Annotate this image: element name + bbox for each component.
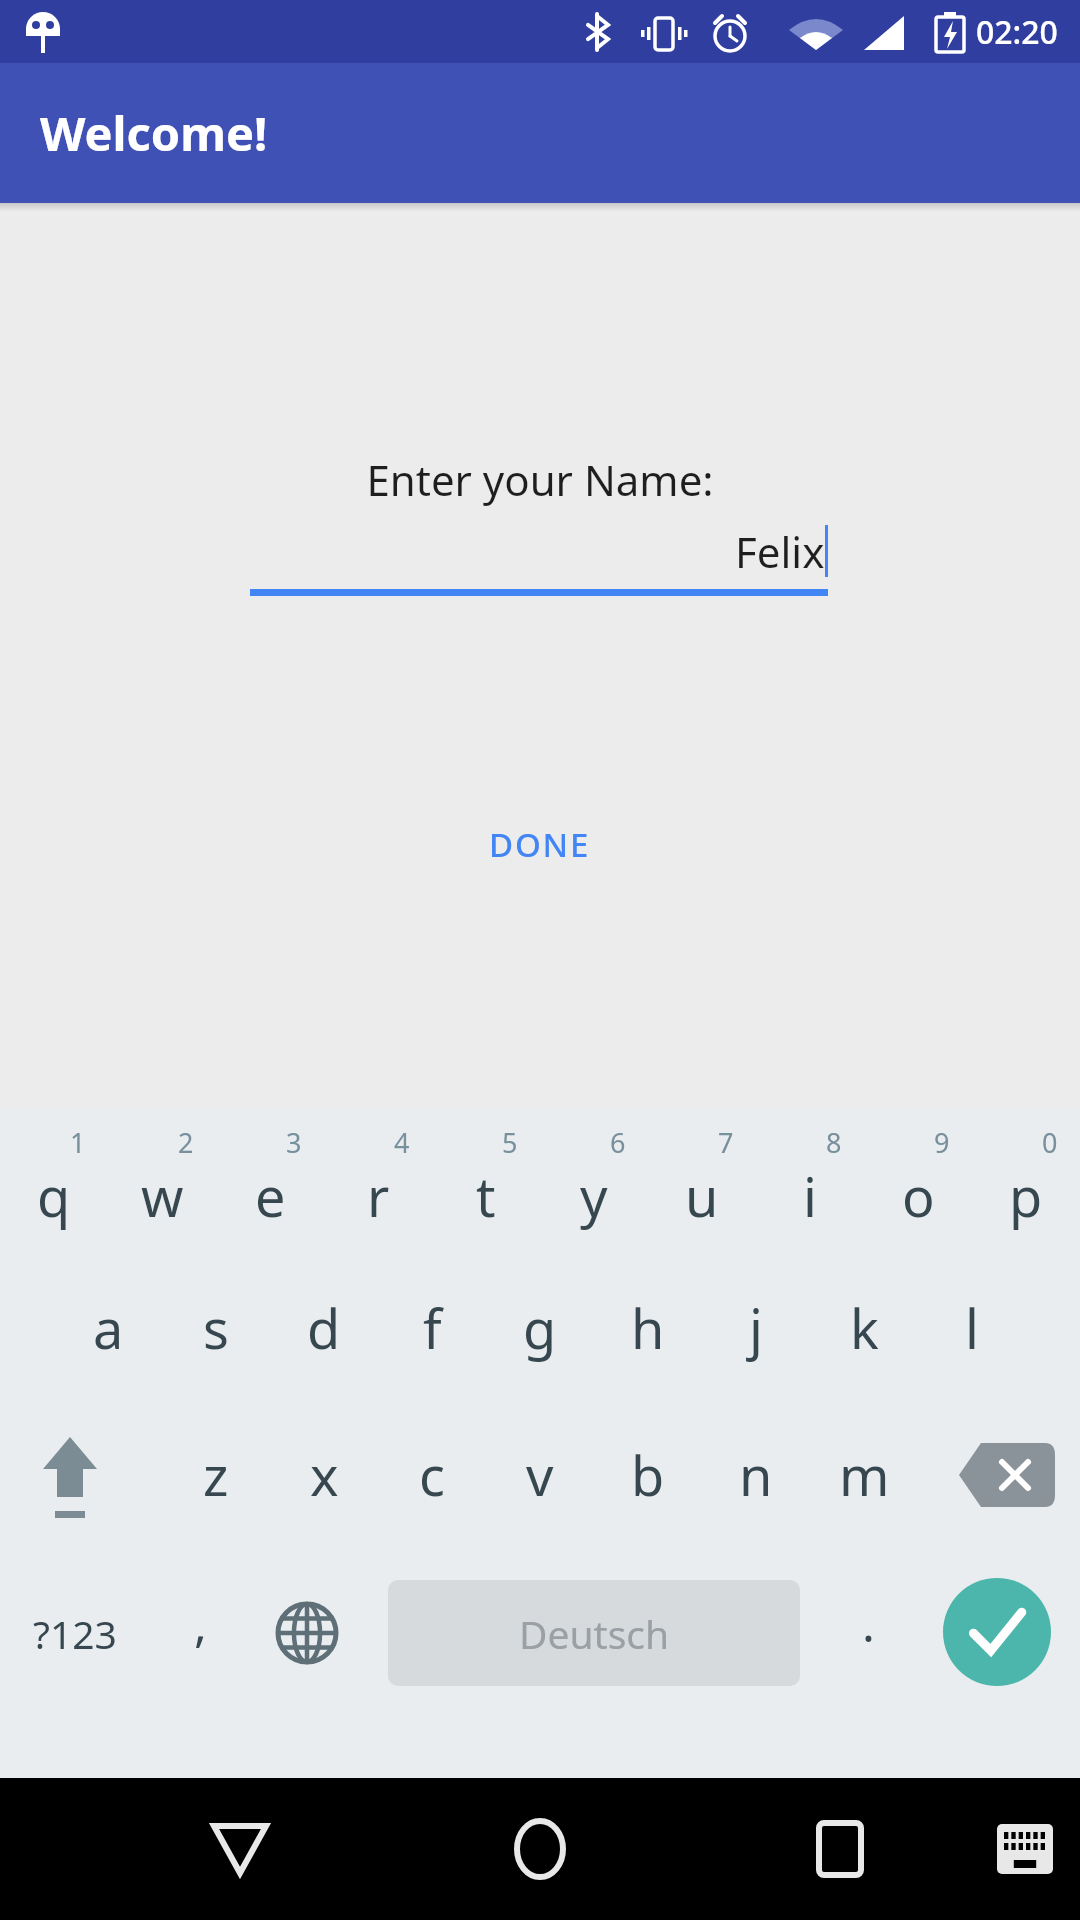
button[interactable]: a [54, 1258, 162, 1398]
staticText: 0 [1042, 1124, 1058, 1161]
button[interactable]: z [162, 1400, 270, 1550]
staticText: j [749, 1291, 763, 1365]
button[interactable]: Backspace [930, 1400, 1080, 1550]
button[interactable]: Recent apps [780, 1778, 900, 1920]
staticText: m [839, 1438, 890, 1512]
staticText: c [419, 1438, 445, 1512]
button[interactable]: Felix [250, 521, 828, 601]
staticText: 2 [178, 1124, 194, 1161]
button[interactable]: j [702, 1258, 810, 1398]
staticText: h [631, 1291, 665, 1365]
staticText: n [739, 1438, 773, 1512]
button[interactable]: Change keyboard language [252, 1558, 362, 1708]
button[interactable]: Shift [0, 1400, 140, 1550]
staticText: 5 [502, 1124, 518, 1161]
button[interactable]: r [324, 1108, 432, 1256]
staticText: 7 [718, 1124, 734, 1161]
staticText: . [862, 1591, 875, 1656]
staticText: v [526, 1438, 554, 1512]
staticText: 4 [394, 1124, 410, 1161]
staticText: , [194, 1591, 207, 1656]
button[interactable]: h [594, 1258, 702, 1398]
button[interactable]: Back [180, 1778, 300, 1920]
button[interactable]: o [864, 1108, 972, 1256]
staticText: Enter your Name: [0, 451, 1080, 508]
button[interactable]: d [270, 1258, 378, 1398]
staticText: DONE [489, 822, 591, 867]
button[interactable]: ?123 [0, 1558, 150, 1708]
staticText: e [255, 1159, 286, 1233]
staticText: q [37, 1159, 71, 1233]
staticText: 6 [610, 1124, 626, 1161]
staticText: z [203, 1438, 229, 1512]
button[interactable]: c [378, 1400, 486, 1550]
button[interactable]: DONE [463, 806, 617, 883]
button[interactable]: b [594, 1400, 702, 1550]
button[interactable]: . [818, 1558, 918, 1708]
button[interactable]: k [810, 1258, 918, 1398]
button[interactable]: q [0, 1108, 108, 1256]
staticText: a [93, 1291, 124, 1365]
staticText: Felix [735, 523, 825, 580]
button[interactable]: p [972, 1108, 1080, 1256]
staticText: r [367, 1159, 390, 1233]
button[interactable]: y [540, 1108, 648, 1256]
staticText: g [523, 1291, 557, 1365]
staticText: l [965, 1291, 979, 1365]
staticText: 02:20 [976, 10, 1058, 54]
button[interactable]: Home [480, 1778, 600, 1920]
staticText: d [307, 1291, 341, 1365]
button[interactable]: v [486, 1400, 594, 1550]
staticText: y [580, 1159, 608, 1233]
button[interactable]: s [162, 1258, 270, 1398]
button[interactable]: Deutsch [388, 1580, 800, 1686]
staticText: o [902, 1159, 935, 1233]
button[interactable]: n [702, 1400, 810, 1550]
button[interactable]: x [270, 1400, 378, 1550]
button[interactable]: Enter [943, 1578, 1051, 1686]
button[interactable]: m [810, 1400, 918, 1550]
staticText: x [310, 1438, 339, 1512]
staticText: u [685, 1159, 719, 1233]
button[interactable]: l [918, 1258, 1026, 1398]
staticText: 3 [286, 1124, 302, 1161]
staticText: t [476, 1159, 496, 1233]
staticText: 8 [826, 1124, 842, 1161]
button[interactable]: e [216, 1108, 324, 1256]
staticText: f [423, 1291, 442, 1365]
button[interactable]: i [756, 1108, 864, 1256]
button[interactable]: u [648, 1108, 756, 1256]
staticText: Welcome! [40, 101, 268, 165]
staticText: s [203, 1291, 229, 1365]
staticText: k [850, 1291, 879, 1365]
button[interactable]: t [432, 1108, 540, 1256]
button[interactable]: Hide keyboard [972, 1778, 1078, 1920]
staticText: b [631, 1438, 665, 1512]
button[interactable]: , [150, 1558, 250, 1708]
staticText: Deutsch [519, 1607, 670, 1660]
button[interactable]: f [378, 1258, 486, 1398]
staticText: w [141, 1159, 184, 1233]
staticText: 9 [934, 1124, 950, 1161]
staticText: p [1009, 1159, 1043, 1233]
staticText: i [803, 1159, 817, 1233]
staticText: 1 [70, 1124, 86, 1161]
button[interactable]: g [486, 1258, 594, 1398]
staticText: ?123 [33, 1607, 117, 1660]
button[interactable]: w [108, 1108, 216, 1256]
